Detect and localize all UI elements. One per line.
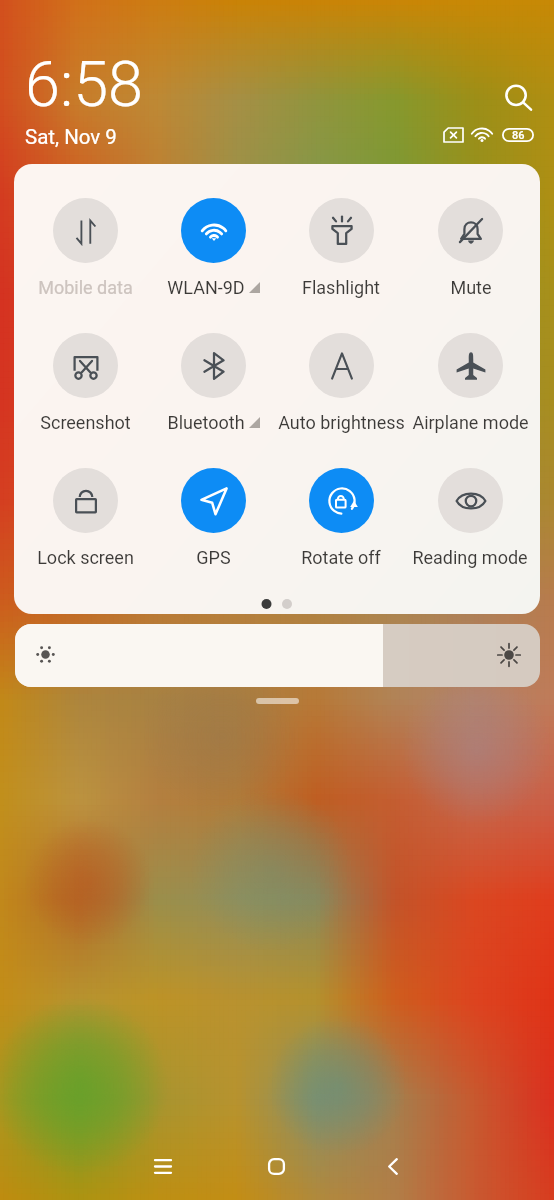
button[interactable]: Reading mode xyxy=(406,468,534,580)
staticText: 6:58 xyxy=(25,48,144,122)
staticText: Mute xyxy=(450,277,492,298)
button[interactable]: Bluetooth xyxy=(149,333,277,445)
staticText: Lock screen xyxy=(37,547,134,568)
staticText: 86 xyxy=(512,129,525,142)
staticText: Sat, Nov 9 xyxy=(25,125,117,149)
button[interactable]: Auto brightness xyxy=(277,333,405,445)
button[interactable]: Airplane mode xyxy=(406,333,534,445)
staticText: Screenshot xyxy=(40,412,131,433)
button[interactable]: Mobile data xyxy=(21,198,149,310)
staticText: Airplane mode xyxy=(412,412,529,433)
button[interactable]: Flashlight xyxy=(277,198,405,310)
staticText: Bluetooth xyxy=(167,412,245,433)
button[interactable]: Recents xyxy=(146,1150,179,1183)
button[interactable]: Rotate off xyxy=(277,468,405,580)
button[interactable]: GPS xyxy=(149,468,277,580)
staticText: Mobile data xyxy=(38,277,133,298)
staticText: Rotate off xyxy=(301,547,381,568)
staticText: Auto brightness xyxy=(278,412,405,433)
staticText: WLAN-9D xyxy=(167,277,245,298)
button[interactable] xyxy=(15,624,540,687)
button[interactable]: Back xyxy=(376,1150,409,1183)
button[interactable]: Lock screen xyxy=(21,468,149,580)
button[interactable]: Screenshot xyxy=(21,333,149,445)
button[interactable]: WLAN-9D xyxy=(149,198,277,310)
button[interactable]: Mute xyxy=(406,198,534,310)
button[interactable]: Search xyxy=(500,80,537,117)
staticText: Flashlight xyxy=(302,277,380,298)
staticText: Reading mode xyxy=(412,547,528,568)
button[interactable]: Home xyxy=(260,1150,293,1183)
staticText: GPS xyxy=(196,547,231,568)
